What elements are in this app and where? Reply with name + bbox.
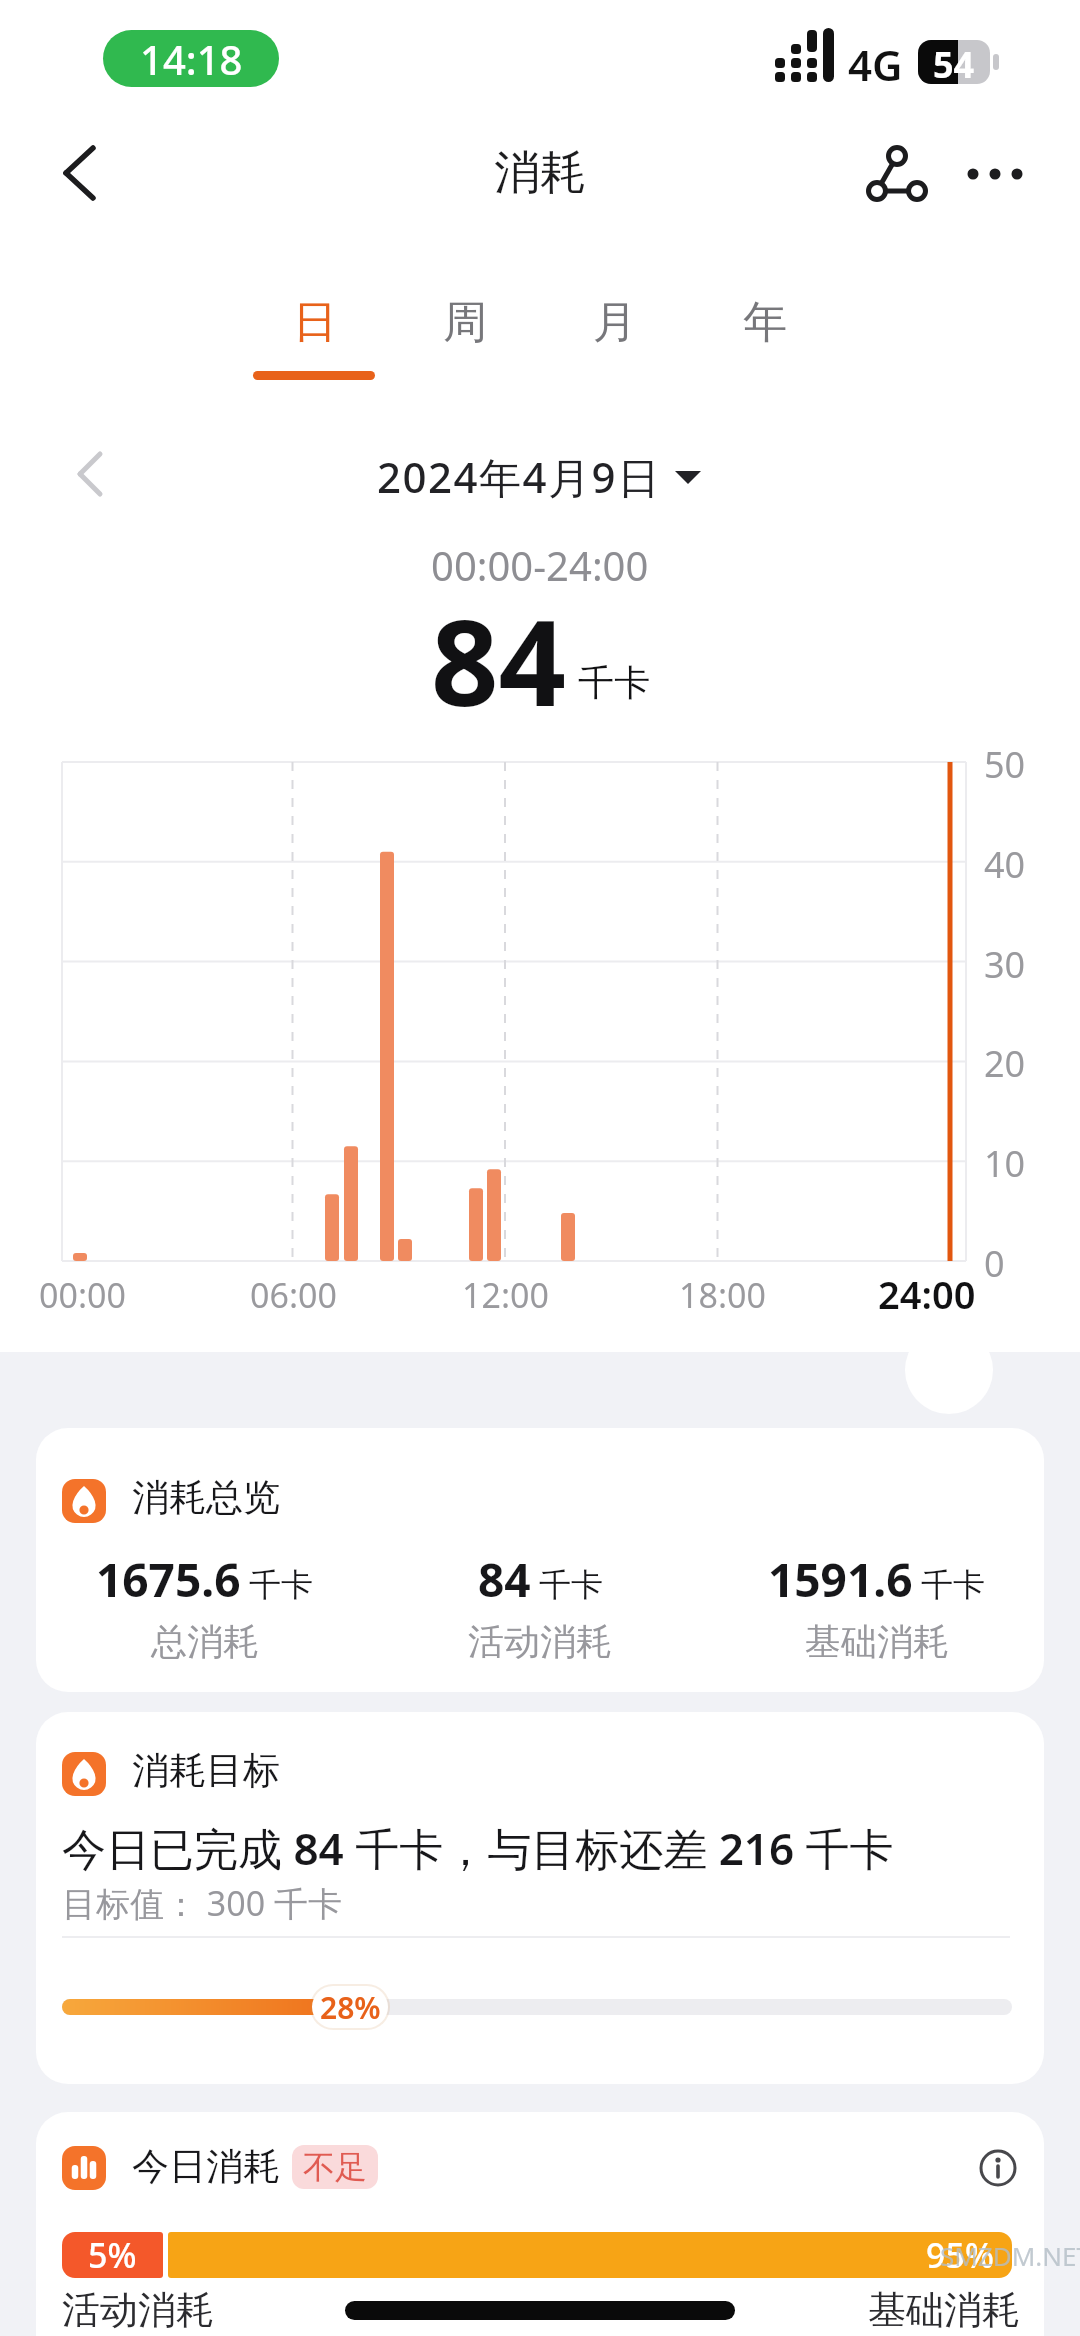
staticText: 28%: [320, 1987, 381, 2028]
staticText: 月: [593, 295, 637, 350]
staticText: 年: [743, 295, 787, 350]
staticText: 总消耗: [151, 1619, 259, 1664]
staticText: 50: [984, 740, 1026, 789]
staticText: 基础消耗: [868, 2286, 1020, 2334]
staticText: 4G: [848, 36, 903, 93]
staticText: 40: [984, 840, 1026, 889]
staticText: 14:18: [140, 32, 243, 86]
staticText: 活动消耗: [62, 2286, 214, 2334]
staticText: 今日消耗: [132, 2143, 280, 2190]
staticText: 消耗总览: [132, 1474, 280, 1521]
staticText: 1591.6: [768, 1548, 913, 1611]
staticText: 12:00: [462, 1272, 549, 1318]
staticText: 日: [293, 295, 337, 350]
staticText: 84: [431, 580, 566, 741]
staticText: 84: [478, 1548, 531, 1611]
staticText: 活动消耗: [468, 1619, 612, 1664]
staticText: 目标值： 300 千卡: [62, 1880, 343, 1926]
staticText: 06:00: [250, 1272, 337, 1318]
staticText: 5%: [88, 2232, 137, 2278]
staticText: 00:00: [39, 1272, 126, 1318]
staticText: 2024年4月9日: [377, 448, 661, 505]
staticText: 20: [984, 1039, 1026, 1088]
staticText: 30: [984, 940, 1026, 989]
staticText: 24:00: [878, 1268, 976, 1320]
staticText: SMZDM.NET: [940, 2238, 1080, 2273]
staticText: 0: [984, 1239, 1005, 1288]
staticText: 周: [443, 295, 487, 350]
staticText: 消耗: [494, 144, 586, 202]
staticText: 00:00-24:00: [431, 538, 649, 592]
staticText: 18:00: [679, 1272, 766, 1318]
staticText: 千卡: [249, 1565, 313, 1605]
staticText: 今日已完成 84 千卡，与目标还差 216 千卡: [62, 1818, 894, 1878]
staticText: 千卡: [578, 660, 650, 705]
staticText: 10: [984, 1139, 1026, 1188]
staticText: 消耗目标: [132, 1747, 280, 1794]
staticText: 95%: [926, 2232, 994, 2278]
staticText: 千卡: [539, 1565, 603, 1605]
staticText: 不足: [303, 2147, 367, 2187]
staticText: 1675.6: [96, 1548, 241, 1611]
staticText: 基础消耗: [805, 1619, 949, 1664]
staticText: 54: [933, 40, 975, 84]
staticText: 千卡: [921, 1565, 985, 1605]
